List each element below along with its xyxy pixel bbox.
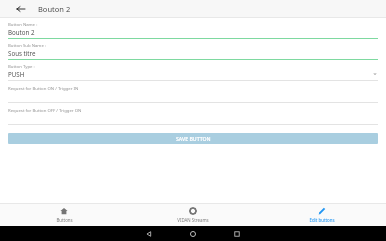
staticText: PUSH (8, 70, 372, 78)
staticText: Request for Button ON / Trigger IN (8, 85, 79, 91)
button[interactable]: Edit buttons (257, 204, 386, 226)
button[interactable]: Buttons (0, 204, 128, 226)
button[interactable]: Button Type : (8, 60, 378, 81)
staticText: Button Sub Name : (8, 42, 47, 48)
button[interactable]: Back (14, 2, 28, 16)
button[interactable]: Button Name : (8, 18, 378, 39)
staticText: VIDAN Streams (177, 217, 209, 223)
staticText: Edit buttons (309, 217, 335, 223)
button[interactable]: SAVE BUTTON (8, 133, 378, 144)
staticText: Bouton 2 (8, 28, 378, 36)
button[interactable]: Recents (226, 226, 248, 241)
staticText: Sous titre (8, 49, 378, 57)
staticText: Bouton 2 (38, 4, 71, 14)
button[interactable]: Back (138, 226, 160, 241)
staticText: Button Type : (8, 63, 35, 69)
button[interactable]: Home (182, 226, 204, 241)
staticText: Buttons (56, 217, 73, 223)
staticText: Button Name : (8, 21, 38, 27)
button[interactable]: Request for Button OFF / Trigger ON (8, 103, 378, 125)
staticText: Request for Button OFF / Trigger ON (8, 107, 82, 113)
staticText: SAVE BUTTON (176, 135, 211, 142)
button[interactable]: VIDAN Streams (128, 204, 257, 226)
button[interactable]: Button Sub Name : (8, 39, 378, 60)
button[interactable]: Request for Button ON / Trigger IN (8, 81, 378, 103)
